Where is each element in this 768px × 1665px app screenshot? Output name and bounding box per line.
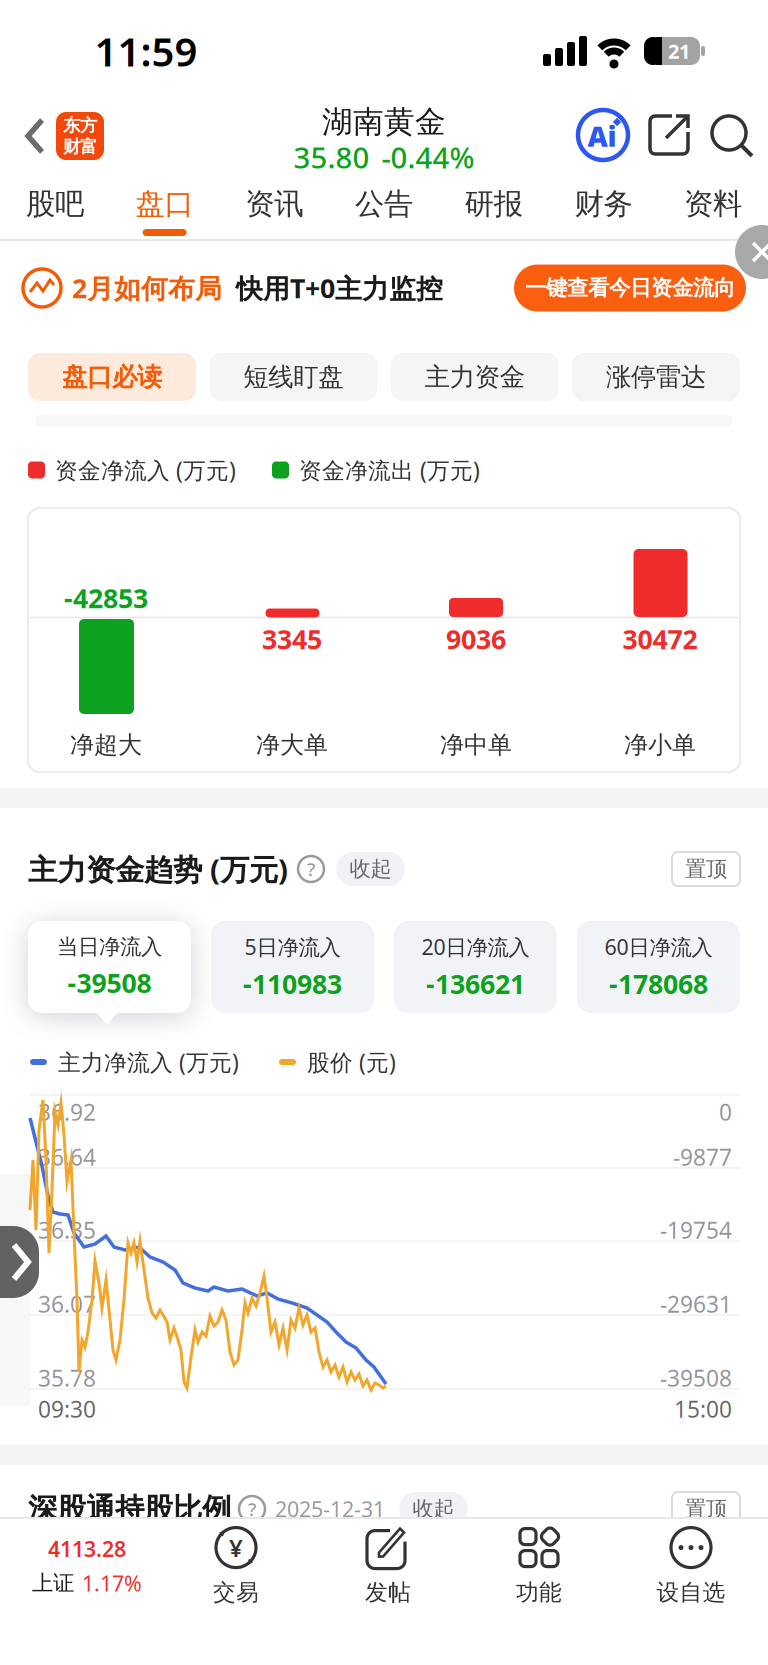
button[interactable] (26, 118, 46, 154)
staticText: -29631 (660, 1289, 732, 1319)
button[interactable]: 置顶 (672, 1492, 740, 1526)
staticText: -19754 (660, 1215, 732, 1245)
button[interactable] (0, 1226, 57, 1298)
button[interactable]: 涨停雷达 (572, 353, 740, 401)
staticText: 30472 (622, 621, 697, 657)
staticText: 收起 (412, 1496, 454, 1522)
staticText: 盘口必读 (62, 361, 162, 392)
staticText: 1.17% (82, 1569, 142, 1597)
staticText: 60日净流入 (604, 933, 712, 961)
button[interactable]: 置顶 (672, 852, 740, 886)
staticText: 净超大 (70, 730, 142, 760)
staticText: 置顶 (685, 856, 727, 882)
button[interactable]: 设自选 (621, 1514, 761, 1618)
button[interactable]: 资料 (658, 180, 768, 242)
staticText: 主力资金趋势 (万元) (28, 849, 288, 888)
button[interactable]: 盘口 (110, 180, 219, 242)
button[interactable]: 5日净流入 (211, 921, 374, 1013)
staticText: 36.92 (38, 1097, 96, 1127)
staticText: 交易 (213, 1579, 259, 1606)
button[interactable]: 60日净流入 (577, 921, 740, 1013)
staticText: -178068 (609, 966, 708, 1001)
staticText: 35.78 (38, 1363, 96, 1393)
button[interactable]: 20日净流入 (394, 921, 557, 1013)
button[interactable]: 一键查看今日资金流向 (514, 264, 746, 311)
button[interactable]: 收起 (399, 1492, 468, 1526)
staticText: 股吧 (26, 186, 84, 222)
staticText: -42853 (64, 580, 148, 616)
staticText: 主力资金 (425, 361, 525, 392)
staticText: 09:30 (38, 1394, 96, 1424)
staticText: 财富 (63, 136, 97, 157)
button[interactable]: 研报 (439, 180, 548, 242)
staticText: -110983 (243, 966, 342, 1001)
staticText: 深股通持股比例 (28, 1491, 231, 1527)
button[interactable]: 短线盯盘 (209, 353, 377, 401)
staticText: 36.64 (38, 1142, 96, 1172)
staticText: -39508 (660, 1363, 732, 1393)
staticText: 2025-12-31 (275, 1495, 385, 1523)
staticText: 公告 (355, 186, 413, 222)
staticText: 净小单 (624, 730, 696, 760)
staticText: -39508 (67, 965, 151, 1000)
staticText: 35.80 (293, 137, 369, 176)
button[interactable]: 盘口必读 (28, 353, 196, 401)
button[interactable]: 股吧 (0, 180, 110, 242)
button[interactable]: 功能 (474, 1514, 604, 1618)
staticText: 东方 (63, 115, 97, 136)
button[interactable]: 公告 (329, 180, 439, 242)
staticText: 36.07 (38, 1289, 96, 1319)
staticText: ? (248, 1497, 256, 1521)
staticText: 21 (668, 38, 690, 64)
staticText: 快用T+0主力监控 (236, 270, 443, 306)
staticText: 湖南黄金 (322, 103, 446, 141)
staticText: 盘口 (136, 186, 194, 222)
staticText: ? (307, 857, 315, 881)
staticText: 11:59 (94, 24, 197, 77)
staticText: 研报 (465, 186, 523, 222)
staticText: ¥ (229, 1532, 243, 1563)
button[interactable]: 主力资金 (391, 353, 559, 401)
staticText: 设自选 (656, 1579, 725, 1606)
staticText: 2月如何布局 (72, 270, 222, 306)
button[interactable] (709, 113, 755, 159)
button[interactable]: 财务 (548, 180, 658, 242)
staticText: 4113.28 (48, 1535, 126, 1563)
staticText: 3345 (262, 621, 322, 657)
button[interactable]: 东方 (56, 112, 104, 160)
button[interactable]: Ai (576, 108, 630, 162)
staticText: 置顶 (685, 1496, 727, 1522)
button[interactable]: 资讯 (219, 180, 329, 242)
staticText: 9036 (446, 621, 506, 657)
staticText: 20日净流入 (421, 933, 529, 961)
staticText: 15:00 (674, 1394, 732, 1424)
staticText: -0.44% (381, 137, 474, 176)
staticText: -9877 (673, 1142, 732, 1172)
staticText: 主力净流入 (万元) (58, 1047, 239, 1077)
staticText: 上证 (32, 1570, 74, 1596)
staticText: 一键查看今日资金流向 (525, 275, 735, 301)
staticText: 当日净流入 (57, 934, 162, 960)
staticText: 涨停雷达 (606, 361, 706, 392)
staticText: 5日净流入 (244, 933, 340, 961)
staticText: 净中单 (440, 730, 512, 760)
button[interactable] (735, 225, 768, 279)
button[interactable] (646, 112, 692, 158)
staticText: 收起 (349, 856, 391, 882)
staticText: 0 (719, 1097, 732, 1127)
staticText: 资金净流入 (万元) (55, 455, 236, 485)
staticText: -136621 (426, 966, 525, 1001)
staticText: 36.35 (38, 1215, 96, 1245)
staticText: Ai (587, 117, 616, 155)
button[interactable]: 收起 (336, 852, 405, 886)
staticText: 资料 (684, 186, 742, 222)
staticText: 功能 (516, 1579, 562, 1606)
staticText: 资金净流出 (万元) (299, 455, 480, 485)
staticText: 短线盯盘 (243, 361, 343, 392)
button[interactable]: ¥ (171, 1514, 301, 1618)
button[interactable]: 发帖 (323, 1514, 453, 1618)
staticText: 股价 (元) (307, 1047, 396, 1077)
button[interactable]: 4113.28 (7, 1516, 167, 1616)
staticText: 净大单 (256, 730, 328, 760)
button[interactable]: 当日净流入 (28, 921, 191, 1013)
